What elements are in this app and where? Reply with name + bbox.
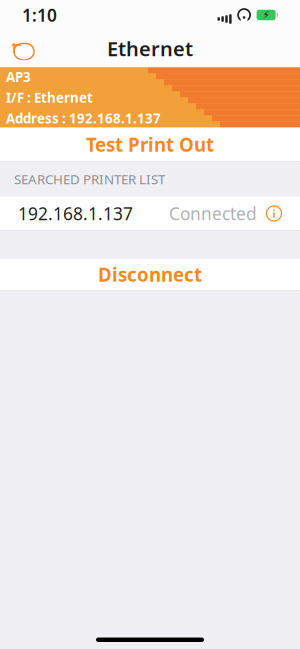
staticText: AP3 [6, 68, 31, 86]
staticText: I/F : Ethernet [6, 89, 93, 106]
staticText: Ethernet [107, 35, 193, 62]
button[interactable]: Test Print Out [0, 127, 300, 161]
staticText: 1:10 [22, 3, 57, 26]
staticText: Connected [169, 202, 257, 225]
button[interactable]: 192.168.1.137 [0, 196, 300, 230]
staticText: Test Print Out [86, 132, 214, 157]
staticText: SEARCHED PRINTER LIST [14, 170, 165, 188]
staticText: ⚡︎ [263, 9, 270, 21]
button[interactable]: Disconnect [0, 258, 300, 290]
button[interactable]: Back [0, 30, 44, 67]
staticText: Address : 192.168.1.137 [6, 109, 161, 127]
staticText: Disconnect [98, 262, 202, 287]
staticText: 192.168.1.137 [18, 202, 133, 225]
